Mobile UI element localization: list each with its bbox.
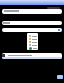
- button[interactable]: [2, 9, 62, 14]
- button[interactable]: [2, 28, 62, 32]
- button[interactable]: [2, 21, 62, 25]
- button[interactable]: Compose: [57, 75, 63, 79]
- button[interactable]: [2, 53, 62, 59]
- button[interactable]: [27, 33, 38, 50]
- button[interactable]: Filter: [47, 7, 60, 9]
